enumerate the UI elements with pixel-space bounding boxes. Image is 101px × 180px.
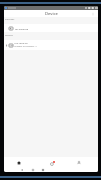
button[interactable]: Back xyxy=(20,167,24,172)
button[interactable]: 192.168.8.40 xyxy=(4,40,98,50)
button[interactable]: More options xyxy=(91,12,95,16)
button[interactable]: Home xyxy=(12,157,26,168)
staticText: Devices xyxy=(5,34,13,37)
button[interactable]: My Favorite xyxy=(4,24,98,32)
staticText: Favorites xyxy=(5,18,15,21)
button[interactable]: Message xyxy=(45,157,59,168)
button[interactable]: Home xyxy=(31,167,35,172)
staticText: Number of channels: 4 xyxy=(14,45,37,48)
staticText: Device xyxy=(45,11,58,17)
staticText: 192.168.8.40 xyxy=(14,42,28,45)
button[interactable]: Me xyxy=(72,157,86,168)
button[interactable]: Recents xyxy=(41,167,45,172)
staticText: My Favorite xyxy=(15,27,29,30)
